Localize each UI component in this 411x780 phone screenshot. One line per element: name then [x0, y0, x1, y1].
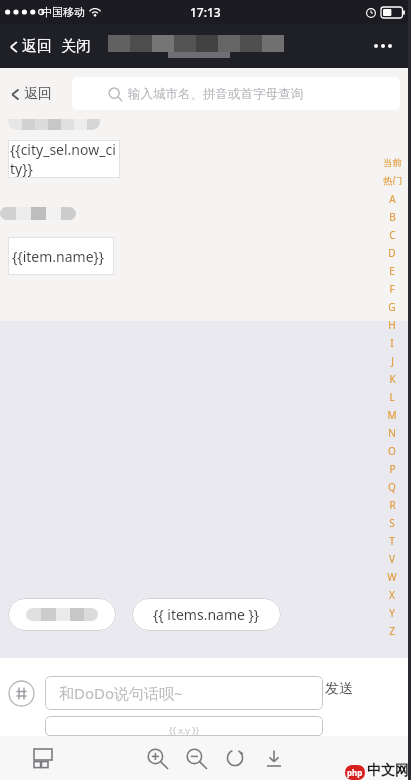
- staticText: I: [390, 336, 394, 350]
- button[interactable]: R: [381, 496, 403, 514]
- button[interactable]: H: [381, 316, 403, 334]
- staticText: B: [389, 210, 396, 224]
- staticText: F: [389, 282, 395, 296]
- staticText: J: [391, 354, 394, 368]
- staticText: 17:13: [190, 4, 221, 20]
- button[interactable]: Zoom out: [186, 748, 206, 768]
- button[interactable]: Q: [381, 478, 403, 496]
- staticText: {{ x.y }}: [169, 724, 200, 736]
- button[interactable]: V: [381, 550, 403, 568]
- button[interactable]: 发送: [325, 680, 353, 698]
- staticText: P: [389, 462, 396, 476]
- button[interactable]: B: [381, 208, 403, 226]
- staticText: 热门: [383, 175, 402, 187]
- button[interactable]: E: [381, 262, 403, 280]
- button[interactable]: 输入城市名、拼音或首字母查询: [72, 77, 400, 110]
- staticText: O: [388, 444, 396, 458]
- button[interactable]: {{city_sel.now_city}}: [8, 140, 120, 178]
- button[interactable]: T: [381, 532, 403, 550]
- button[interactable]: {{item.name}}: [8, 237, 114, 275]
- staticText: E: [389, 264, 395, 278]
- staticText: {{city_sel.now_city}}: [10, 140, 120, 178]
- button[interactable]: X: [381, 586, 403, 604]
- button[interactable]: P: [381, 460, 403, 478]
- button[interactable]: M: [381, 406, 403, 424]
- staticText: C: [389, 228, 396, 242]
- staticText: {{ items.name }}: [153, 605, 260, 624]
- staticText: V: [389, 552, 395, 566]
- button[interactable]: Tabs: [33, 748, 53, 768]
- staticText: {{item.name}}: [12, 247, 105, 266]
- staticText: L: [389, 390, 395, 404]
- staticText: X: [389, 588, 395, 602]
- button[interactable]: D: [381, 244, 403, 262]
- staticText: A: [389, 192, 396, 206]
- staticText: T: [389, 534, 395, 548]
- button[interactable]: Download: [264, 748, 284, 768]
- staticText: H: [388, 318, 396, 332]
- staticText: 返回: [24, 85, 52, 103]
- staticText: Q: [388, 480, 396, 494]
- staticText: 中文网: [367, 762, 409, 780]
- button[interactable]: 返回: [8, 85, 52, 103]
- button[interactable]: G: [381, 298, 403, 316]
- button[interactable]: 热门: [381, 172, 403, 190]
- staticText: 输入城市名、拼音或首字母查询: [128, 86, 303, 102]
- button[interactable]: More options: [367, 30, 399, 62]
- button[interactable]: S: [381, 514, 403, 532]
- button[interactable]: A: [381, 190, 403, 208]
- button[interactable]: L: [381, 388, 403, 406]
- staticText: M: [387, 408, 397, 422]
- button[interactable]: [8, 598, 116, 631]
- staticText: php: [347, 767, 363, 778]
- button[interactable]: F: [381, 280, 403, 298]
- button[interactable]: {{ items.name }}: [132, 598, 281, 631]
- staticText: R: [389, 498, 396, 512]
- staticText: 和DoDo说句话呗~: [59, 683, 183, 703]
- staticText: G: [388, 300, 396, 314]
- button[interactable]: 关闭: [61, 37, 91, 56]
- staticText: S: [389, 516, 395, 530]
- staticText: W: [387, 570, 397, 584]
- staticText: N: [388, 426, 396, 440]
- staticText: 中国移动: [41, 5, 85, 19]
- button[interactable]: C: [381, 226, 403, 244]
- button[interactable]: Refresh: [225, 748, 245, 768]
- button[interactable]: 当前: [381, 154, 403, 172]
- button[interactable]: Z: [381, 622, 403, 640]
- button[interactable]: O: [381, 442, 403, 460]
- button[interactable]: 和DoDo说句话呗~: [45, 676, 323, 710]
- staticText: 返回: [22, 37, 52, 56]
- staticText: {{city: [25, 80, 61, 100]
- staticText: Y: [389, 606, 395, 620]
- button[interactable]: 返回: [6, 37, 91, 56]
- button[interactable]: K: [381, 370, 403, 388]
- button[interactable]: W: [381, 568, 403, 586]
- button[interactable]: Emoji: [8, 680, 35, 707]
- staticText: K: [389, 372, 396, 386]
- button[interactable]: I: [381, 334, 403, 352]
- staticText: 当前: [383, 157, 402, 169]
- button[interactable]: J: [381, 352, 403, 370]
- staticText: Z: [389, 624, 395, 638]
- staticText: D: [388, 246, 396, 260]
- staticText: 点击切换城市: [22, 98, 94, 113]
- button[interactable]: Zoom in: [147, 748, 167, 768]
- button[interactable]: Y: [381, 604, 403, 622]
- button[interactable]: N: [381, 424, 403, 442]
